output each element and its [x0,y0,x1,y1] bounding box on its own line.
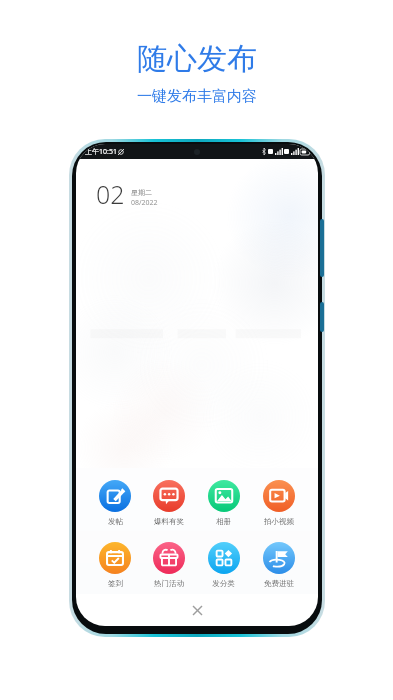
button[interactable]: 爆料有奖 [142,478,196,528]
staticText: 02 [96,177,125,211]
button[interactable]: Close [185,598,209,622]
staticText: 上午10:51 [85,147,117,157]
staticText: 相册 [216,517,231,526]
staticText: 随心发布 [137,40,257,78]
staticText: 爆料有奖 [154,517,184,526]
staticText: 星期二 [131,188,152,197]
staticText: 发帖 [108,517,123,526]
button[interactable]: 拍小视频 [251,478,306,528]
staticText: 免费进驻 [264,579,294,588]
button[interactable]: 签到 [88,540,142,590]
staticText: 一键发布丰富内容 [137,87,257,106]
staticText: 拍小视频 [264,517,294,526]
button[interactable]: 相册 [196,478,251,528]
staticText: 08/2022 [131,198,158,208]
button[interactable]: 免费进驻 [251,540,306,590]
staticText: 签到 [108,579,123,588]
staticText: 热门活动 [154,579,184,588]
button[interactable]: 发帖 [88,478,142,528]
button[interactable]: 发分类 [196,540,251,590]
staticText: 发分类 [212,579,235,588]
button[interactable]: 热门活动 [142,540,196,590]
